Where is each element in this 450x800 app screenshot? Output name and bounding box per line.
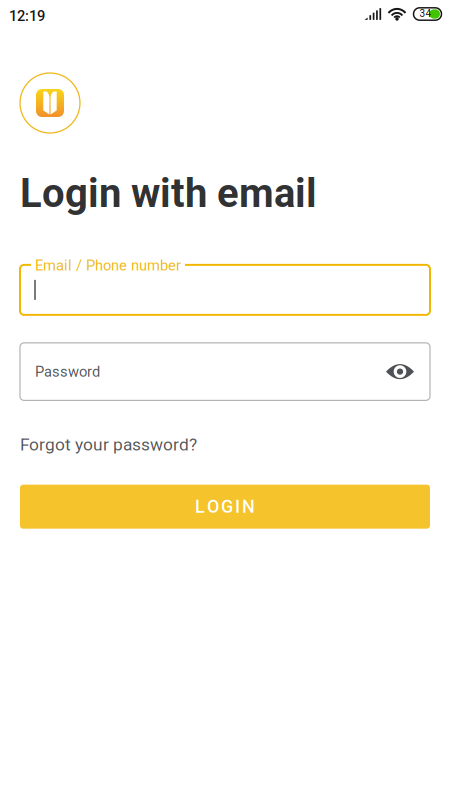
staticText: Password (35, 363, 100, 380)
staticText: Login with email (20, 170, 317, 217)
button[interactable]: Forgot your password? (0, 426, 217, 463)
staticText: 34 (419, 8, 431, 19)
button[interactable]: L O G I N (20, 485, 430, 529)
staticText: 12:19 (9, 7, 45, 25)
staticText: Forgot your password? (20, 434, 197, 455)
staticText: L O G I N (195, 496, 255, 517)
button[interactable]: Show password (385, 355, 415, 389)
staticText: Email / Phone number (35, 257, 181, 274)
